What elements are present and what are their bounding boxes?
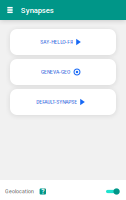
- staticText: SAY-HELLO-FR: [40, 39, 73, 45]
- button[interactable]: Menu: [4, 0, 16, 20]
- staticText: Geolocation: [5, 188, 34, 195]
- staticText: Synapses: [21, 6, 54, 15]
- staticText: DEFAULT-SYNAPSE: [36, 99, 77, 105]
- button[interactable]: DEFAULT-SYNAPSE: [10, 89, 116, 115]
- button[interactable]: Help: [40, 188, 46, 194]
- button[interactable]: SAY-HELLO-FR: [10, 29, 116, 55]
- button[interactable]: Geolocation toggle: [104, 185, 120, 197]
- button[interactable]: GENEVA-GEO: [10, 59, 116, 85]
- staticText: ?: [41, 187, 44, 195]
- staticText: GENEVA-GEO: [41, 69, 70, 75]
